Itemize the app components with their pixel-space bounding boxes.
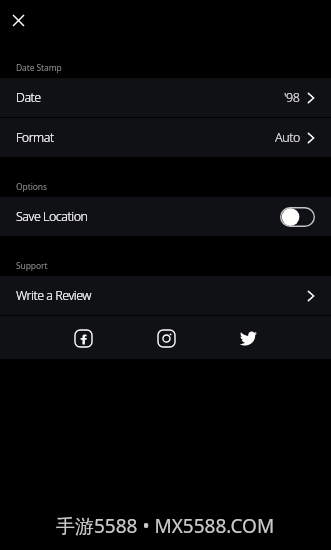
staticText: Auto	[275, 129, 300, 146]
button[interactable]: Save Location	[0, 197, 331, 236]
button[interactable]: Twitter	[231, 321, 265, 355]
staticText: Save Location	[16, 208, 88, 225]
staticText: '98	[284, 89, 300, 106]
button[interactable]: Close	[3, 5, 33, 35]
button[interactable]: Facebook	[66, 321, 100, 355]
staticText: Date Stamp	[16, 62, 62, 74]
staticText: Date	[16, 89, 41, 106]
staticText: Support	[16, 260, 48, 272]
button[interactable]: Write a Review	[0, 276, 331, 315]
staticText: Options	[16, 181, 47, 193]
button[interactable]: Instagram	[149, 321, 183, 355]
staticText: Format	[16, 129, 54, 146]
button[interactable]: Date	[0, 78, 331, 117]
staticText: Write a Review	[16, 287, 92, 304]
button[interactable]: Format	[0, 118, 331, 157]
staticText: 手游5588 • MX5588.COM	[56, 513, 275, 539]
